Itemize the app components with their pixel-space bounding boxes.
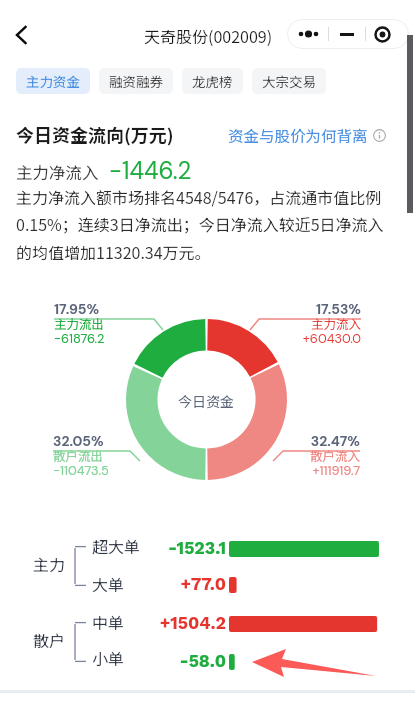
button[interactable]: Minimize	[329, 19, 365, 49]
staticText: 主力流入	[310, 314, 361, 332]
staticText: -1446.2	[109, 155, 192, 186]
staticText: 大单	[92, 572, 125, 595]
button[interactable]: Close	[366, 19, 409, 49]
staticText: 今日资金流向(万元)	[16, 121, 174, 147]
staticText: 中单	[92, 610, 125, 633]
staticText: 主力资金	[26, 71, 80, 91]
staticText: 小单	[92, 646, 125, 669]
staticText: +1504.2	[126, 613, 226, 634]
staticText: -58.0	[126, 651, 226, 672]
staticText: 散户	[33, 628, 66, 651]
staticText: 32.05%	[53, 432, 104, 450]
staticText: 融资融券	[109, 71, 163, 91]
staticText: 32.47%	[310, 432, 360, 450]
button[interactable]: Back	[0, 13, 44, 57]
staticText: 17.53%	[316, 300, 361, 318]
button[interactable]: More options	[287, 19, 328, 49]
button[interactable]: 大宗交易	[252, 68, 326, 94]
staticText: 散户流入	[309, 446, 360, 464]
staticText: 主力净流入额市场排名4548/5476，占流通市值比例0.15%；连续3日净流出…	[16, 185, 392, 264]
staticText: 龙虎榜	[192, 71, 233, 91]
button[interactable]: 龙虎榜	[182, 68, 243, 94]
staticText: 天奇股份(002009)	[144, 24, 273, 47]
staticText: 主力净流入	[16, 160, 99, 184]
staticText: 今日资金	[178, 391, 234, 411]
staticText: -61876.2	[54, 330, 105, 347]
staticText: 主力	[33, 552, 66, 575]
staticText: +77.0	[126, 574, 226, 595]
staticText: 资金与股价为何背离	[228, 124, 368, 146]
staticText: 主力流出	[54, 314, 105, 332]
staticText: +60430.0	[302, 330, 361, 347]
staticText: +111919.7	[312, 462, 360, 479]
staticText: 17.95%	[54, 300, 100, 318]
staticText: -1523.1	[126, 538, 226, 559]
staticText: -110473.5	[53, 462, 109, 479]
staticText: 散户流出	[53, 446, 104, 464]
button[interactable]: 融资融券	[99, 68, 173, 94]
staticText: 大宗交易	[262, 71, 316, 91]
button[interactable]: 主力资金	[16, 68, 90, 94]
button[interactable]: 资金与股价为何背离	[228, 124, 386, 146]
staticText: 超大单	[92, 534, 141, 557]
